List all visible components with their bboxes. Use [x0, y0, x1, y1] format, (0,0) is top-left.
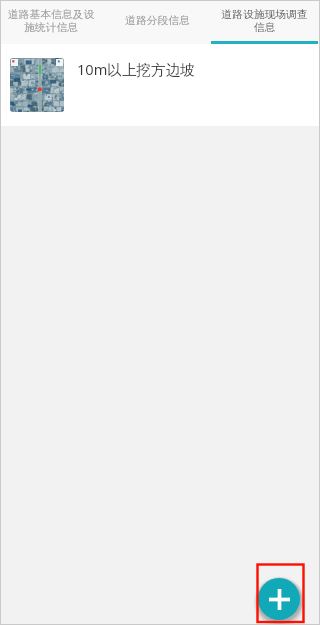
- staticText: 10m以上挖方边坡: [77, 59, 195, 79]
- button[interactable]: 10m以上挖方边坡: [0, 44, 320, 126]
- button[interactable]: 道路设施现场调查信息: [211, 0, 318, 44]
- button[interactable]: 道路分段信息: [104, 0, 211, 44]
- button[interactable]: Add: [258, 578, 300, 620]
- staticText: 道路基本信息及设施统计信息: [6, 8, 96, 35]
- staticText: 道路设施现场调查信息: [219, 8, 310, 35]
- button[interactable]: 道路基本信息及设施统计信息: [0, 0, 104, 44]
- staticText: 道路分段信息: [125, 14, 190, 28]
